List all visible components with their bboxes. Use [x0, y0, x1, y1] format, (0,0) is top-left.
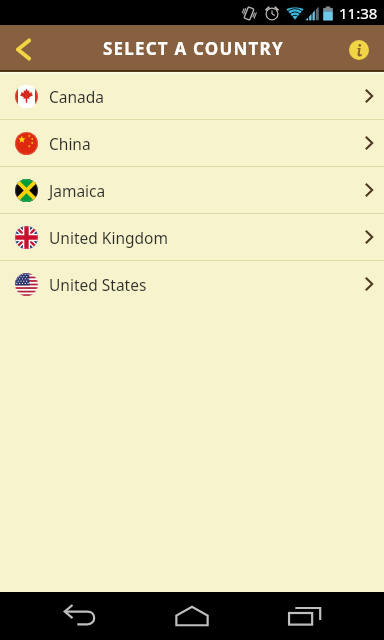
staticText: United States [49, 274, 147, 295]
button[interactable]: United States [0, 261, 384, 308]
button[interactable]: Info [340, 25, 384, 70]
staticText: China [49, 133, 91, 154]
button[interactable]: China [0, 120, 384, 167]
staticText: Canada [49, 86, 104, 107]
staticText: 11:38 [339, 3, 378, 23]
button[interactable]: Canada [0, 73, 384, 120]
button[interactable]: Back [0, 592, 128, 640]
button[interactable]: Jamaica [0, 167, 384, 214]
button[interactable]: United Kingdom [0, 214, 384, 261]
button[interactable]: Recents [256, 592, 384, 640]
button[interactable]: Back [0, 25, 44, 70]
button[interactable]: Home [128, 592, 256, 640]
staticText: Jamaica [49, 180, 106, 201]
staticText: United Kingdom [49, 227, 168, 248]
staticText: SELECT A COUNTRY [103, 37, 284, 60]
